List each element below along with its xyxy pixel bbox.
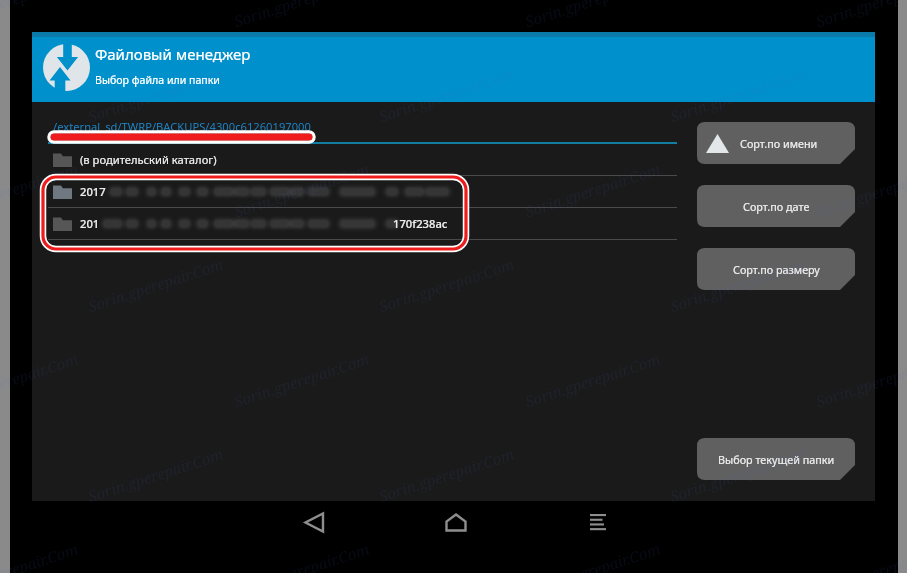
button[interactable]: Сорт.по размеру bbox=[697, 248, 855, 290]
button[interactable]: /external_sd/TWRP/BACKUPS/4300c612601970… bbox=[53, 119, 311, 134]
staticText: Sorin.gperepair.Com bbox=[813, 349, 907, 411]
staticText: Sorin.gperepair.Com bbox=[0, 0, 81, 31]
staticText: Sorin.gperepair.Com bbox=[0, 159, 81, 221]
staticText: (в родительский каталог) bbox=[80, 152, 217, 167]
staticText: Sorin.gperepair.Com bbox=[813, 159, 907, 221]
staticText: Сорт.по дате bbox=[743, 199, 810, 214]
staticText: Sorin.gperepair.Com bbox=[376, 254, 517, 316]
staticText: Sorin.gperepair.Com bbox=[85, 64, 226, 126]
staticText: Sorin.gperepair.Com bbox=[0, 349, 81, 411]
staticText: Выбор файла или папки bbox=[95, 73, 220, 87]
button[interactable]: 201 bbox=[48, 208, 677, 239]
staticText: 2017 bbox=[80, 184, 106, 199]
staticText: Выбор текущей папки bbox=[718, 452, 835, 467]
staticText: Sorin.gperepair.Com bbox=[85, 444, 226, 506]
staticText: Sorin.gperepair.Com bbox=[522, 539, 663, 573]
staticText: Sorin.gperepair.Com bbox=[85, 254, 226, 316]
staticText: Sorin.gperepair.Com bbox=[813, 539, 907, 573]
staticText: Файловый менеджер bbox=[95, 44, 251, 64]
button[interactable]: Выбор текущей папки bbox=[697, 438, 855, 480]
staticText: Sorin.gperepair.Com bbox=[231, 0, 372, 31]
button[interactable]: Menu bbox=[563, 487, 633, 557]
staticText: Sorin.gperepair.Com bbox=[231, 159, 372, 221]
staticText: Sorin.gperepair.Com bbox=[522, 349, 663, 411]
button[interactable]: Сорт.по дате bbox=[697, 185, 855, 227]
staticText: Sorin.gperepair.Com bbox=[376, 444, 517, 506]
staticText: Sorin.gperepair.Com bbox=[522, 0, 663, 31]
staticText: Сорт.по имени bbox=[740, 136, 818, 151]
staticText: Sorin.gperepair.Com bbox=[522, 159, 663, 221]
staticText: Сорт.по размеру bbox=[733, 262, 820, 277]
staticText: 201 bbox=[80, 216, 100, 231]
staticText: Sorin.gperepair.Com bbox=[667, 254, 808, 316]
staticText: Sorin.gperepair.Com bbox=[667, 444, 808, 506]
staticText: Sorin.gperepair.Com bbox=[667, 64, 808, 126]
button[interactable]: Back bbox=[278, 487, 348, 557]
button[interactable]: 2017 bbox=[48, 176, 677, 207]
staticText: Sorin.gperepair.Com bbox=[231, 349, 372, 411]
staticText: Sorin.gperepair.Com bbox=[0, 539, 81, 573]
button[interactable]: (в родительский каталог) bbox=[48, 144, 677, 175]
staticText: Sorin.gperepair.Com bbox=[376, 64, 517, 126]
staticText: Sorin.gperepair.Com bbox=[231, 539, 372, 573]
staticText: Sorin.gperepair.Com bbox=[813, 0, 907, 31]
button[interactable]: Сорт.по имени bbox=[697, 122, 855, 164]
button[interactable]: Home bbox=[421, 487, 491, 557]
staticText: 170f238ac bbox=[393, 216, 448, 231]
